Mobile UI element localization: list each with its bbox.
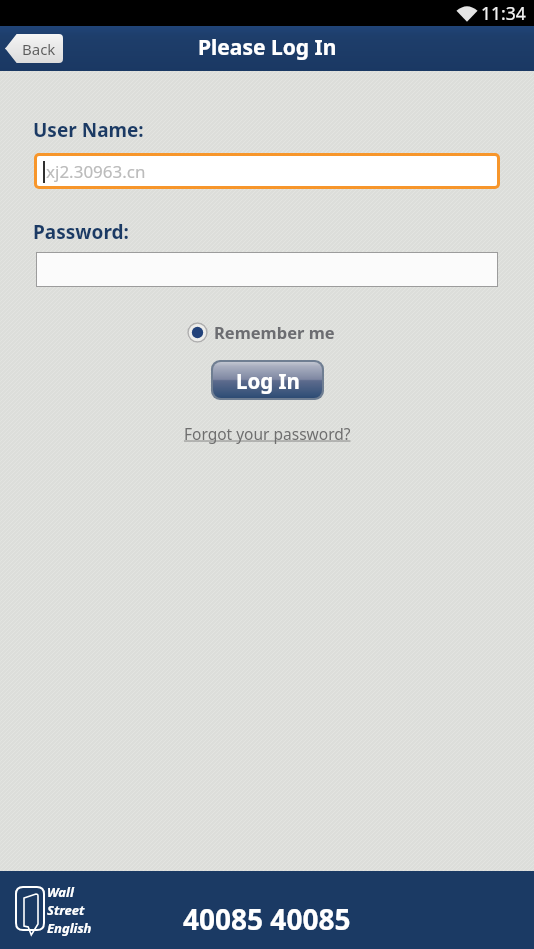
staticText: 11:34 <box>481 1 526 25</box>
staticText: Log In <box>236 367 300 395</box>
staticText: Street <box>47 901 85 919</box>
button[interactable]: Remember me <box>187 321 335 343</box>
staticText: 40085 40085 <box>183 900 351 938</box>
button[interactable]: Log In <box>213 362 322 398</box>
staticText: Wall <box>47 883 74 901</box>
staticText: Password: <box>33 219 129 245</box>
button[interactable]: xj2.30963.cn <box>37 156 497 186</box>
staticText: Back <box>22 39 56 59</box>
button[interactable]: Back <box>5 34 63 63</box>
staticText: Please Log In <box>198 33 337 62</box>
staticText: User Name: <box>33 117 144 143</box>
button[interactable]: Forgot your password? <box>184 423 351 444</box>
staticText: English <box>47 919 92 937</box>
staticText: xj2.30963.cn <box>46 160 146 183</box>
staticText: Remember me <box>214 321 335 343</box>
